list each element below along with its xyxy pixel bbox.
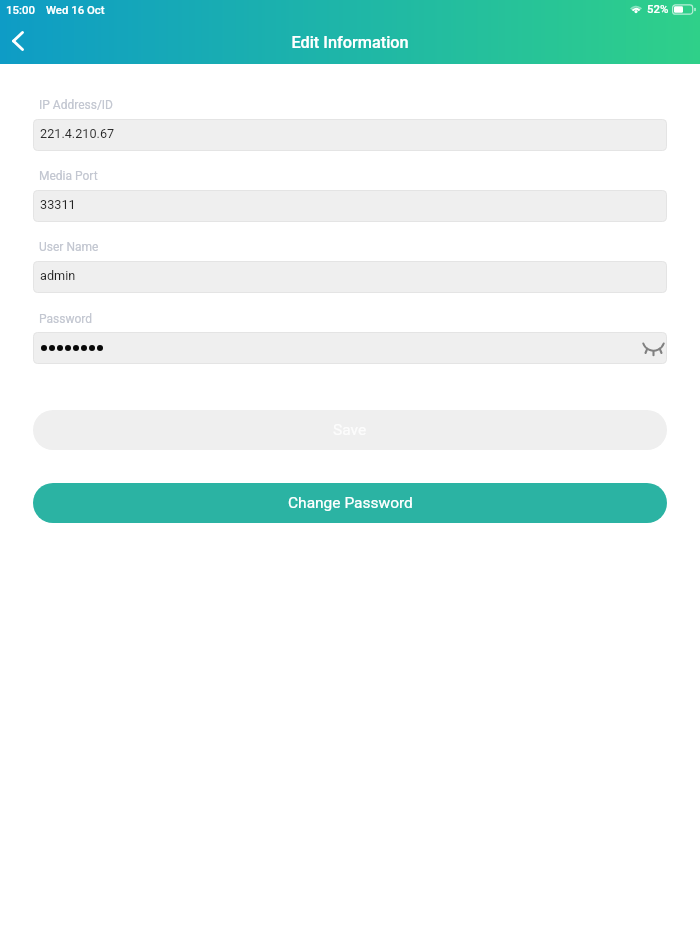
staticText: Change Password: [288, 494, 413, 512]
staticText: 221.4.210.67: [40, 126, 115, 141]
button[interactable]: Back: [0, 19, 40, 63]
staticText: 15:00: [6, 3, 35, 16]
button[interactable]: admin: [33, 261, 667, 293]
staticText: admin: [40, 268, 76, 283]
button[interactable]: Show password: [33, 332, 667, 364]
staticText: Password: [39, 312, 93, 326]
button[interactable]: Change Password: [33, 483, 667, 523]
button[interactable]: 221.4.210.67: [33, 119, 667, 151]
staticText: Edit Information: [291, 33, 409, 52]
staticText: Media Port: [39, 169, 98, 183]
button[interactable]: 33311: [33, 190, 667, 222]
staticText: Save: [333, 421, 367, 439]
staticText: 52%: [647, 2, 669, 15]
staticText: 33311: [40, 197, 76, 212]
button[interactable]: Show password: [635, 332, 667, 364]
staticText: User Name: [39, 240, 99, 254]
staticText: Wed 16 Oct: [46, 3, 105, 16]
staticText: IP Address/ID: [39, 98, 113, 112]
